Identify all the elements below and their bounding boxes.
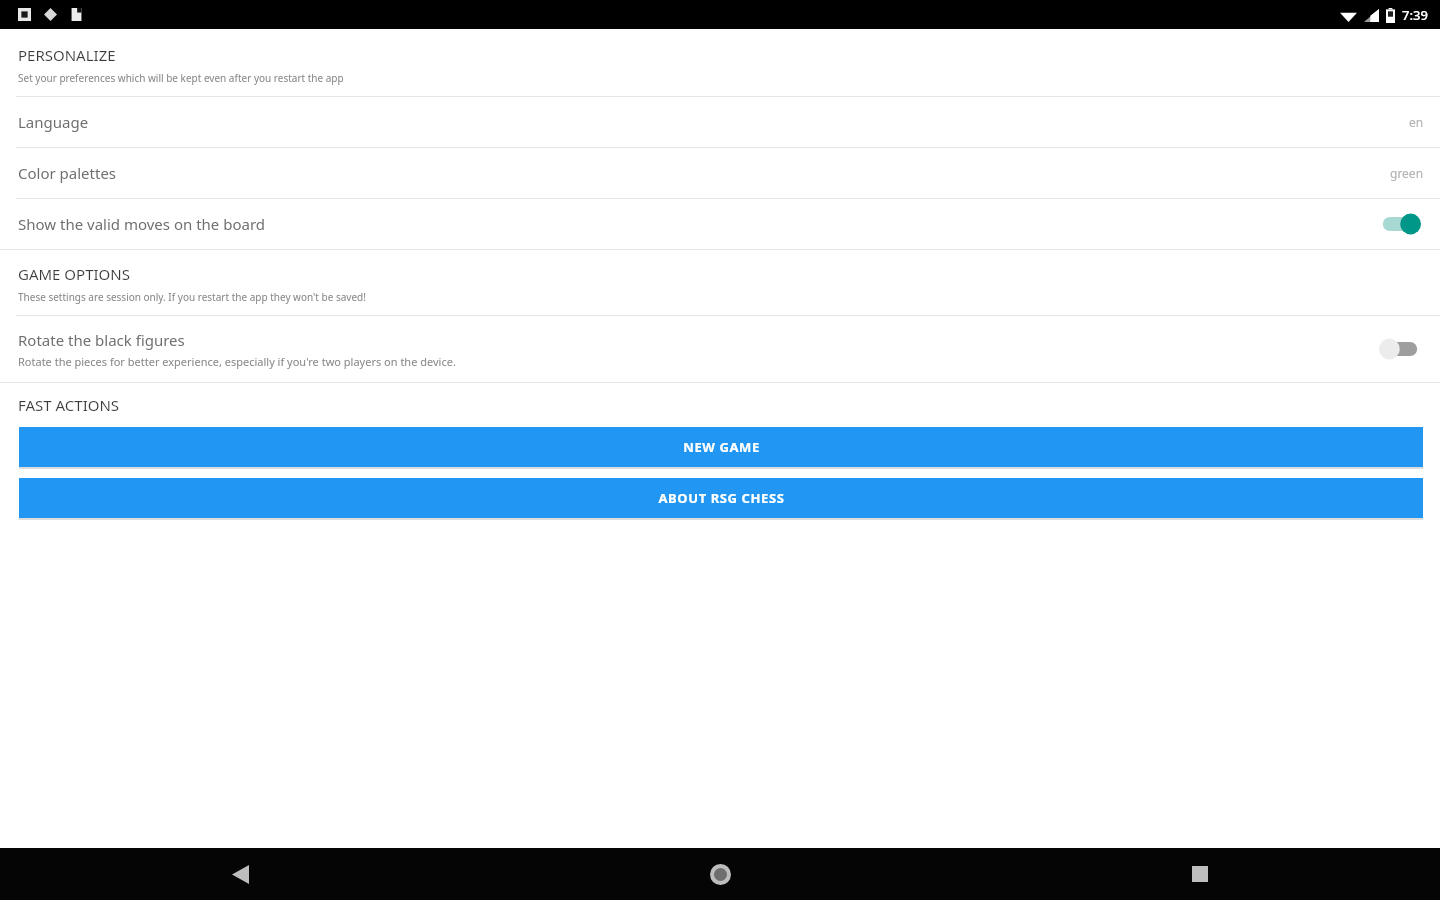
button[interactable]: NEW GAME bbox=[19, 427, 1423, 467]
staticText: GAME OPTIONS bbox=[18, 264, 130, 284]
staticText: These settings are session only. If you … bbox=[18, 290, 366, 304]
staticText: Rotate the pieces for better experience,… bbox=[18, 354, 456, 369]
button[interactable]: Back bbox=[218, 852, 262, 896]
staticText: Set your preferences which will be kept … bbox=[18, 71, 344, 85]
staticText: Show the valid moves on the board bbox=[18, 214, 1378, 234]
button[interactable]: ABOUT RSG CHESS bbox=[19, 478, 1423, 518]
button[interactable]: Toggle on bbox=[1378, 211, 1422, 237]
staticText: ABOUT RSG CHESS bbox=[658, 489, 785, 507]
button[interactable]: Toggle off bbox=[1378, 336, 1422, 362]
button[interactable]: Recents bbox=[1178, 852, 1222, 896]
staticText: Rotate the black figures bbox=[18, 330, 185, 350]
button[interactable]: Rotate the black figures bbox=[0, 316, 1440, 382]
staticText: en bbox=[1409, 114, 1424, 130]
button[interactable]: Show the valid moves on the board bbox=[0, 199, 1440, 249]
staticText: Color palettes bbox=[18, 163, 1390, 183]
button[interactable]: Color palettes bbox=[0, 148, 1440, 198]
staticText: 7:39 bbox=[1402, 6, 1428, 24]
button[interactable]: Home bbox=[698, 852, 742, 896]
staticText: FAST ACTIONS bbox=[18, 395, 120, 415]
staticText: Language bbox=[18, 112, 1409, 132]
staticText: NEW GAME bbox=[683, 438, 760, 456]
staticText: green bbox=[1390, 165, 1424, 181]
staticText: PERSONALIZE bbox=[18, 45, 116, 65]
button[interactable]: Language bbox=[0, 97, 1440, 147]
